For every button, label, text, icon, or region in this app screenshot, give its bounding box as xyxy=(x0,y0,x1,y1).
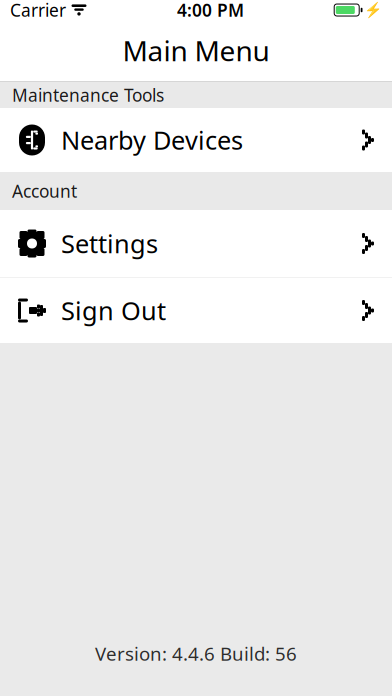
staticText: Carrier xyxy=(10,0,66,21)
button[interactable]: Sign Out xyxy=(0,278,392,343)
staticText: Nearby Devices xyxy=(61,123,243,157)
staticText: Main Menu xyxy=(122,32,269,69)
staticText: Maintenance Tools xyxy=(12,83,164,106)
staticText: Version: 4.4.6 Build: 56 xyxy=(95,641,297,666)
button[interactable]: Nearby Devices xyxy=(0,108,392,172)
staticText: Sign Out xyxy=(61,294,166,327)
staticText: Account xyxy=(12,179,77,202)
staticText: 4:00 PM xyxy=(177,0,244,21)
button[interactable]: Settings xyxy=(0,210,392,278)
staticText: Settings xyxy=(61,227,158,260)
staticText: ⚡ xyxy=(364,2,382,18)
